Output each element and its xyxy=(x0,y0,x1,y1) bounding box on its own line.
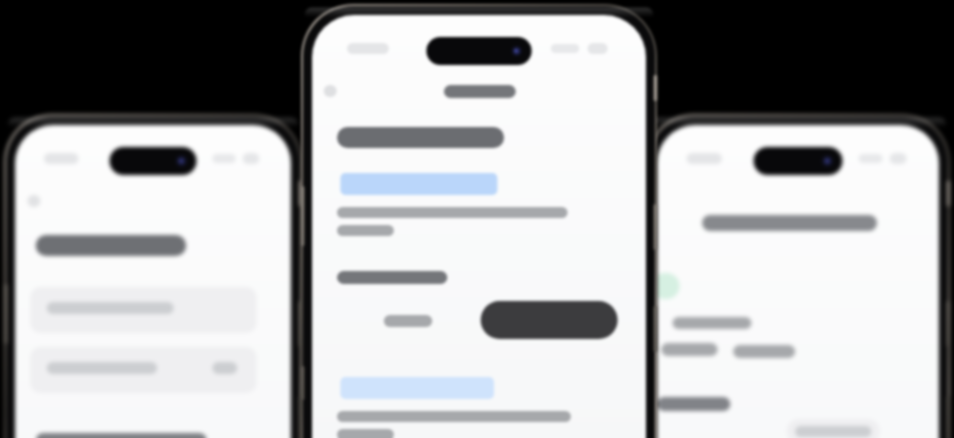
button[interactable] xyxy=(348,369,496,393)
button[interactable] xyxy=(348,167,498,191)
button[interactable]: Back xyxy=(326,72,354,98)
button[interactable] xyxy=(386,308,440,330)
button[interactable] xyxy=(481,300,611,338)
